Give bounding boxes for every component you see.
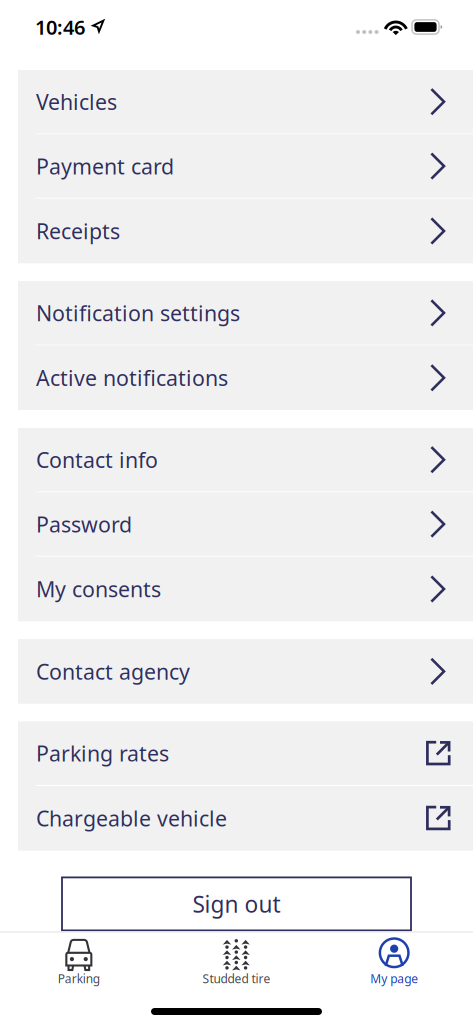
staticText: Payment card <box>36 152 174 180</box>
staticText: Contact info <box>36 445 158 474</box>
staticText: Parking <box>58 970 100 986</box>
staticText: Vehicles <box>36 87 117 116</box>
button[interactable]: Parking rates <box>18 722 473 786</box>
button[interactable]: Contact agency <box>18 639 473 704</box>
staticText: Studded tire <box>202 970 270 986</box>
button[interactable]: Active notifications <box>18 346 473 410</box>
staticText: My page <box>370 970 418 986</box>
button[interactable]: My consents <box>18 557 473 621</box>
button[interactable]: Payment card <box>18 134 473 199</box>
staticText: Notification settings <box>36 299 240 327</box>
button[interactable]: Parking <box>0 936 158 991</box>
button[interactable]: Password <box>18 492 473 557</box>
staticText: My consents <box>36 575 161 603</box>
staticText: Contact agency <box>36 657 190 685</box>
button[interactable]: My page <box>315 936 473 991</box>
button[interactable]: Receipts <box>18 199 473 263</box>
staticText: Receipts <box>36 217 120 245</box>
button[interactable]: Chargeable vehicle <box>18 786 473 850</box>
button[interactable]: Contact info <box>18 428 473 492</box>
button[interactable]: Sign out <box>62 877 411 930</box>
staticText: Active notifications <box>36 364 228 392</box>
staticText: Chargeable vehicle <box>36 804 227 832</box>
staticText: 10:46 <box>35 14 85 40</box>
button[interactable]: Studded tire <box>158 936 315 991</box>
button[interactable]: Notification settings <box>18 281 473 346</box>
button[interactable]: Vehicles <box>18 70 473 134</box>
staticText: Parking rates <box>36 739 169 767</box>
staticText: Password <box>36 510 132 538</box>
staticText: Sign out <box>192 889 280 919</box>
